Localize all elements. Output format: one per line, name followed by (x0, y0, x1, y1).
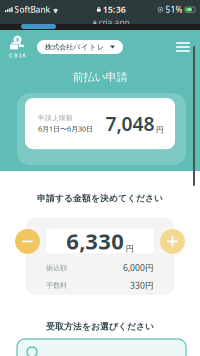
button[interactable]: Decrease amount (15, 229, 40, 254)
button[interactable]: 株式会社バイトレ (37, 40, 123, 54)
staticText: 15:36 (103, 3, 126, 15)
staticText: 51% (165, 4, 182, 15)
staticText: 申請上限額 (38, 114, 73, 122)
staticText: SoftBank (15, 4, 51, 15)
staticText: 手数料 (46, 281, 67, 290)
staticText: 6,330 (66, 226, 124, 256)
staticText: 受取方法をお選びください (46, 321, 154, 332)
staticText: 申請する金額を決めてください (37, 193, 163, 204)
staticText: cria.app (98, 17, 129, 28)
button[interactable]: Increase amount (160, 229, 185, 254)
staticText: 株式会社バイトレ (45, 42, 105, 52)
staticText: 振込額 (46, 263, 67, 272)
staticText: 円 (126, 243, 134, 254)
button[interactable]: Payout method (17, 339, 186, 356)
staticText: 7,048 (105, 110, 154, 137)
button[interactable]: Menu (171, 36, 195, 58)
staticText: 円 (156, 125, 164, 135)
staticText: 330円 (130, 279, 154, 291)
staticText: C R I A (9, 51, 26, 59)
staticText: 前払い申請 (72, 70, 127, 84)
staticText: 6月1日〜6月30日 (38, 124, 93, 134)
staticText: 6,000円 (123, 262, 154, 273)
staticText: ¥ (15, 35, 19, 44)
